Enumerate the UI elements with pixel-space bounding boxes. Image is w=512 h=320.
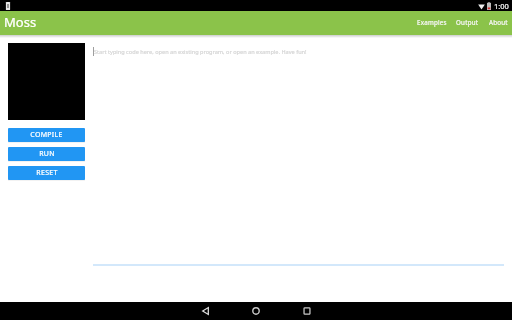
- button[interactable]: Recent apps: [282, 302, 332, 320]
- staticText: 1:00: [494, 1, 509, 11]
- staticText: Output: [456, 18, 479, 26]
- button[interactable]: Start typing code here, open an existing…: [93, 38, 504, 302]
- button[interactable]: Output: [456, 18, 479, 26]
- button[interactable]: About: [489, 18, 508, 26]
- staticText: Start typing code here, open an existing…: [94, 48, 307, 56]
- button[interactable]: Back: [180, 302, 230, 320]
- button[interactable]: COMPILE: [8, 128, 85, 142]
- button[interactable]: RESET: [8, 166, 85, 180]
- staticText: COMPILE: [30, 130, 63, 140]
- staticText: Moss: [4, 13, 37, 31]
- staticText: RUN: [39, 149, 55, 159]
- staticText: About: [489, 18, 508, 26]
- staticText: Examples: [417, 18, 447, 26]
- button[interactable]: Examples: [417, 18, 447, 26]
- button[interactable]: RUN: [8, 147, 85, 161]
- staticText: RESET: [36, 168, 58, 178]
- button[interactable]: Home: [231, 302, 281, 320]
